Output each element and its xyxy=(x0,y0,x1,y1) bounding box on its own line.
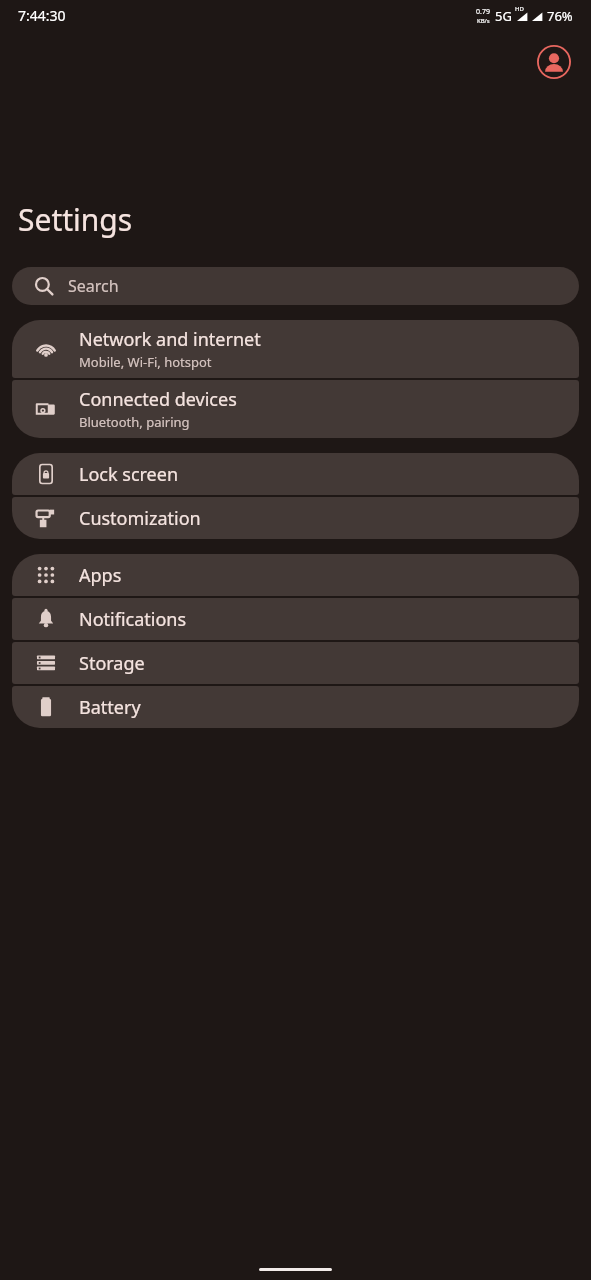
staticText: 76% xyxy=(547,7,573,25)
staticText: Apps xyxy=(79,563,122,588)
staticText: Battery xyxy=(79,695,141,720)
staticText: Network and internet xyxy=(79,327,261,352)
staticText: Storage xyxy=(79,651,145,676)
staticText: Bluetooth, pairing xyxy=(79,413,190,431)
staticText: 7:44:30 xyxy=(18,6,66,25)
staticText: 0.79 xyxy=(476,7,490,17)
staticText: Connected devices xyxy=(79,387,237,412)
button[interactable]: Notifications xyxy=(12,598,579,640)
button[interactable]: Search xyxy=(12,267,579,305)
button[interactable]: Network and internet xyxy=(12,320,579,378)
staticText: Customization xyxy=(79,506,201,531)
staticText: Settings xyxy=(18,199,133,240)
button[interactable]: Battery xyxy=(12,686,579,728)
staticText: Mobile, Wi-Fi, hotspot xyxy=(79,353,212,371)
button[interactable]: Customization xyxy=(12,497,579,539)
staticText: 5G xyxy=(495,7,512,25)
button[interactable]: Connected devices xyxy=(12,380,579,438)
staticText: KB/s xyxy=(477,17,490,25)
button[interactable]: Lock screen xyxy=(12,453,579,495)
staticText: HD xyxy=(515,5,524,13)
button[interactable]: Storage xyxy=(12,642,579,684)
button[interactable]: Apps xyxy=(12,554,579,596)
button[interactable]: Account xyxy=(537,45,571,79)
staticText: Notifications xyxy=(79,607,187,632)
staticText: Lock screen xyxy=(79,462,179,487)
staticText: Search xyxy=(68,275,119,297)
